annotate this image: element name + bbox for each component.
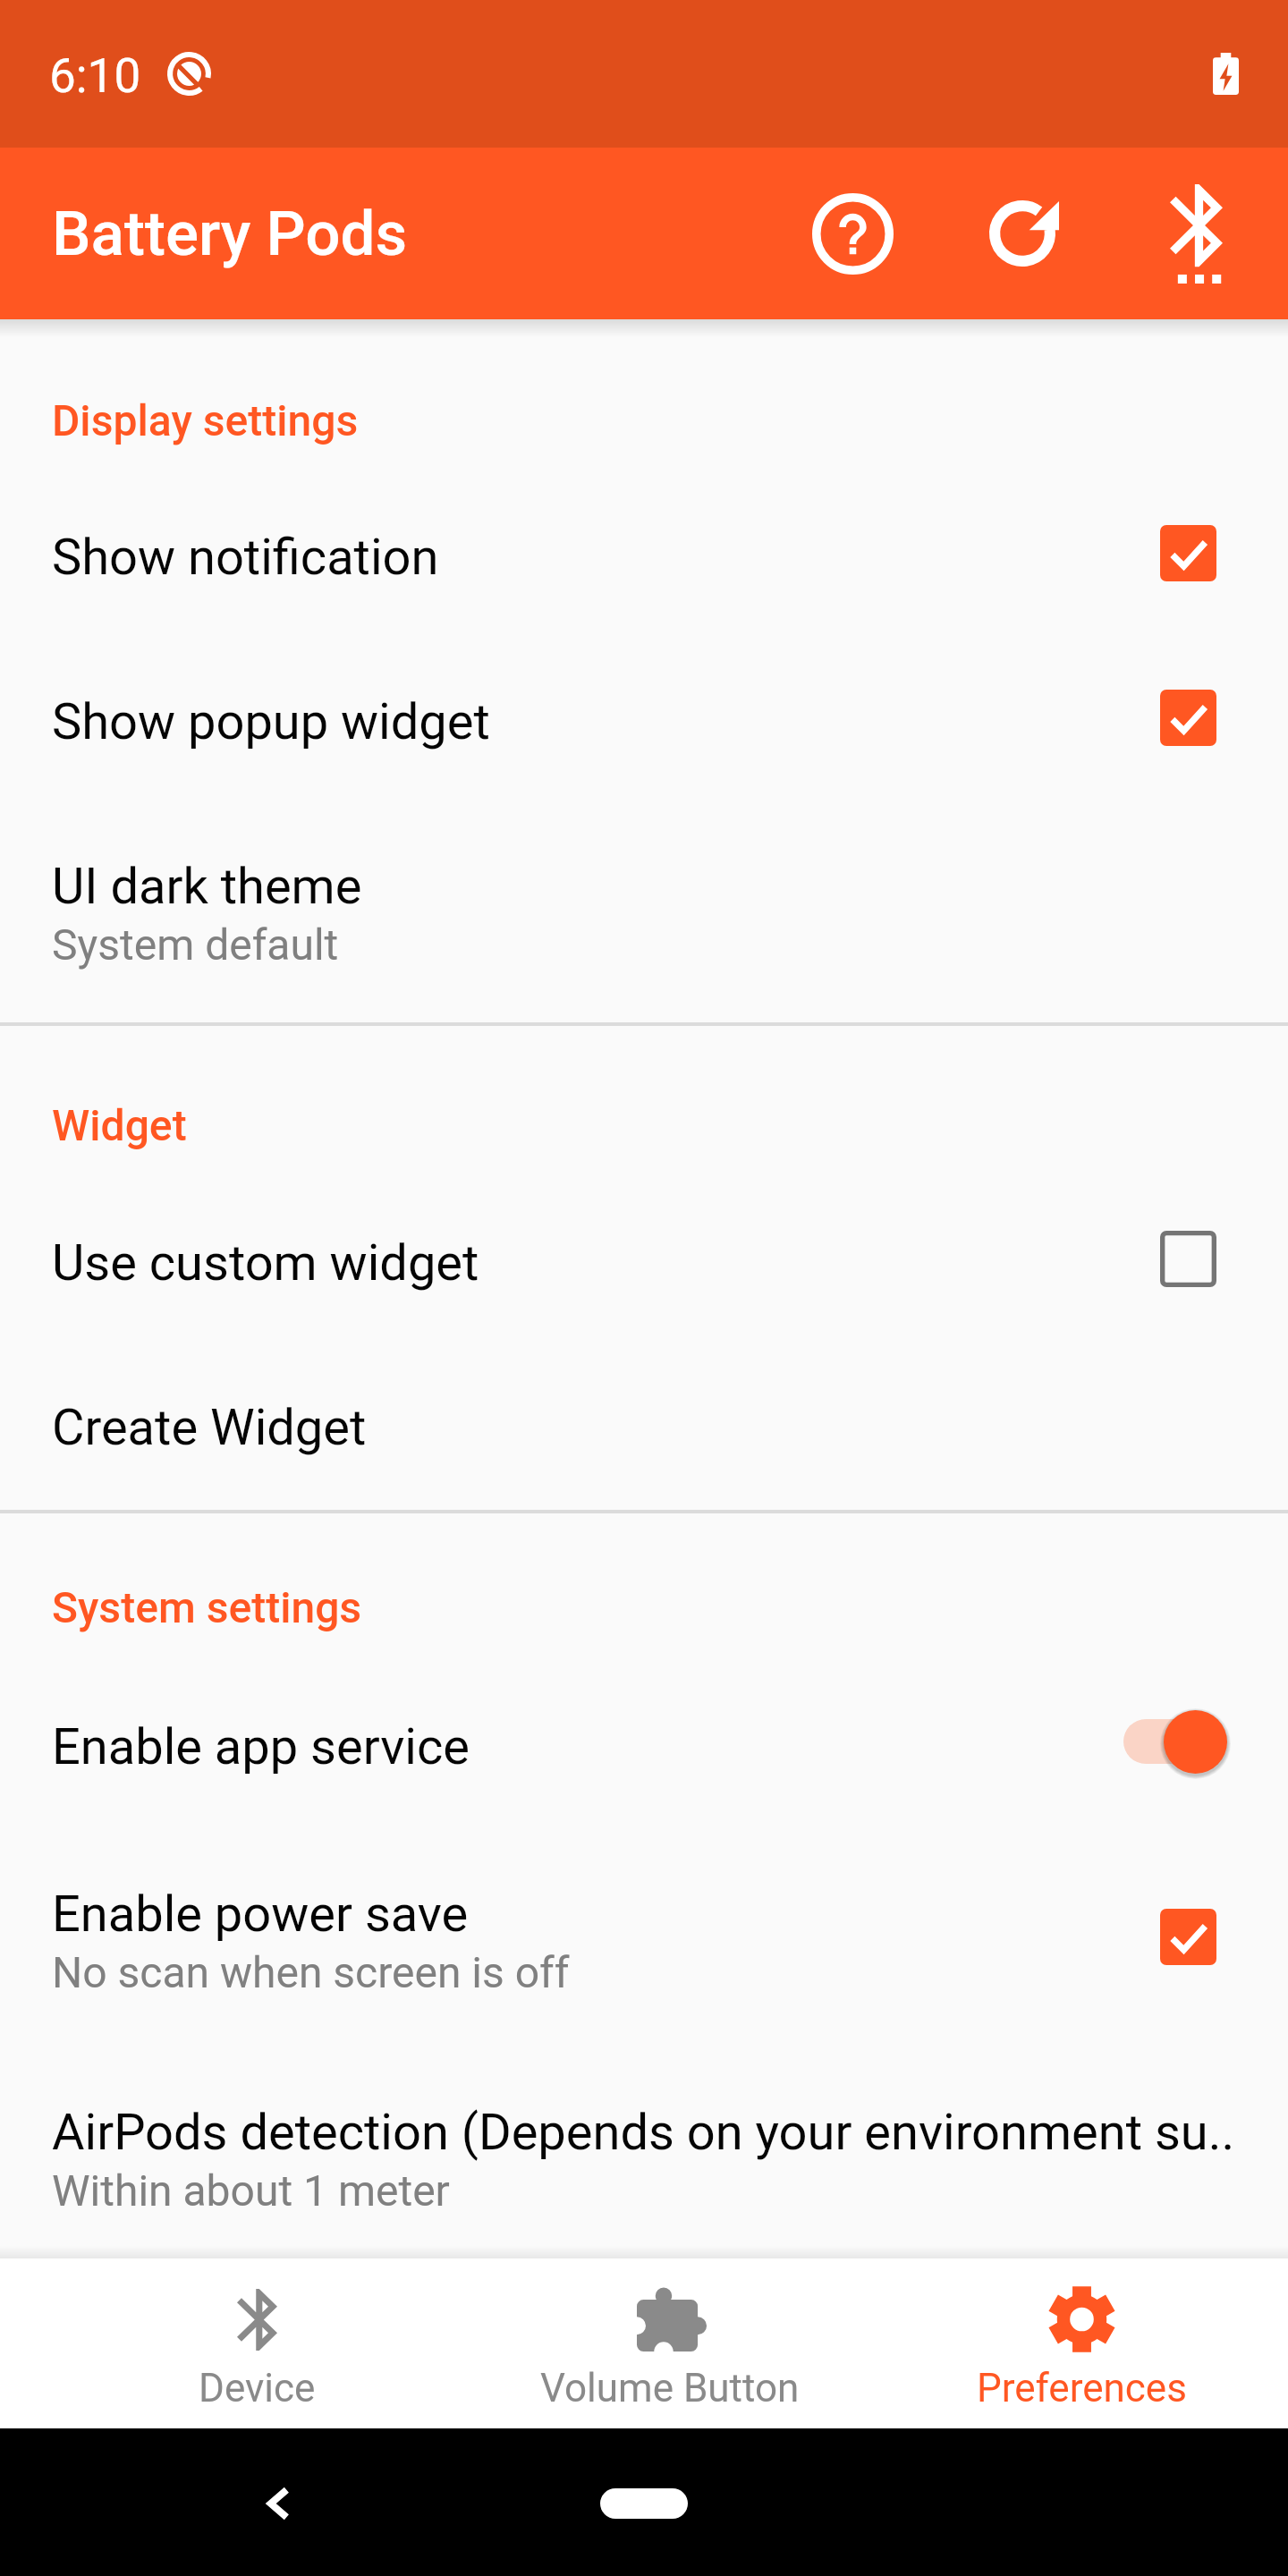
button[interactable]: Create Widget xyxy=(0,1345,1288,1510)
button[interactable]: Device tab xyxy=(51,2258,463,2428)
staticText: Device xyxy=(199,2365,316,2411)
staticText: Create Widget xyxy=(52,1398,367,1457)
button[interactable]: Volume Button tab xyxy=(463,2258,876,2428)
button[interactable]: Refresh xyxy=(938,148,1110,319)
button[interactable]: Show popup widget xyxy=(0,640,1288,804)
staticText: Within about 1 meter xyxy=(52,2165,450,2206)
staticText: Battery Pods xyxy=(52,198,408,270)
staticText: Display settings xyxy=(52,395,359,445)
staticText: Widget xyxy=(52,1100,187,1150)
staticText: Volume Button xyxy=(540,2365,800,2411)
button[interactable]: Preferences tab xyxy=(876,2258,1288,2428)
staticText: No scan when screen is off xyxy=(52,1947,570,1997)
staticText: Enable app service xyxy=(52,1717,470,1776)
button[interactable]: Enable app service xyxy=(0,1662,1288,1832)
button[interactable]: Bluetooth settings xyxy=(1110,148,1282,319)
staticText: UI dark theme xyxy=(52,857,362,916)
button[interactable]: Help xyxy=(767,148,938,319)
staticText: Show notification xyxy=(52,528,439,587)
staticText: Use custom widget xyxy=(52,1233,479,1292)
staticText: System default xyxy=(52,919,339,970)
button[interactable]: Use custom widget xyxy=(0,1181,1288,1345)
staticText: Enable power save xyxy=(52,1885,469,1944)
button[interactable]: AirPods detection (Depends on your envir… xyxy=(0,2050,1288,2258)
other: Home xyxy=(600,2488,688,2519)
staticText: Show popup widget xyxy=(52,692,490,751)
staticText: Preferences xyxy=(977,2365,1187,2411)
button[interactable]: Enable power save xyxy=(0,1832,1288,2050)
button[interactable]: Show notification xyxy=(0,475,1288,640)
button[interactable]: UI dark theme xyxy=(0,804,1288,1022)
staticText: System settings xyxy=(52,1582,362,1632)
staticText: 6:10 xyxy=(49,48,141,104)
staticText: AirPods detection (Depends on your envir… xyxy=(52,2103,1235,2162)
other: Back xyxy=(267,2487,290,2521)
